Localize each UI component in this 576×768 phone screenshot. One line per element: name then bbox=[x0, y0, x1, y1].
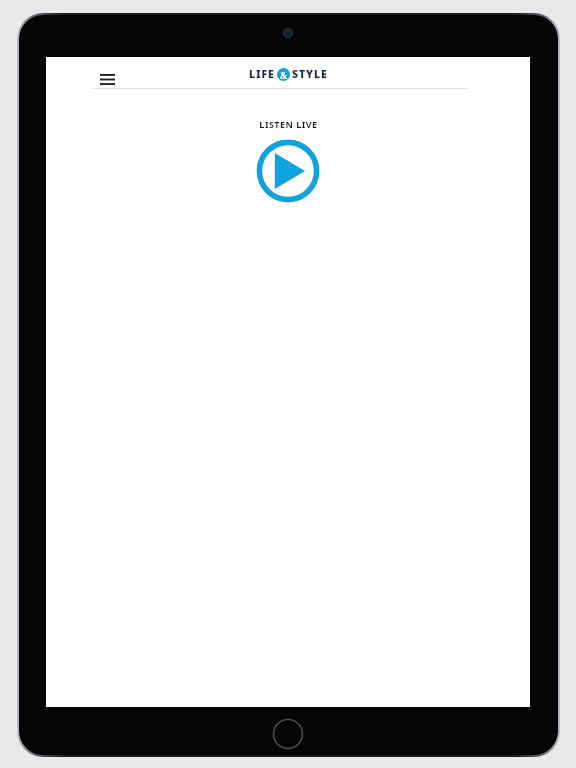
staticText: LIFE bbox=[249, 67, 275, 81]
button[interactable]: LIFE bbox=[249, 67, 328, 81]
staticText: & bbox=[280, 69, 288, 81]
button[interactable]: Open menu bbox=[96, 69, 118, 89]
staticText: STYLE bbox=[292, 67, 328, 81]
button[interactable]: Play live stream bbox=[256, 139, 320, 203]
staticText: LISTEN LIVE bbox=[259, 118, 318, 130]
